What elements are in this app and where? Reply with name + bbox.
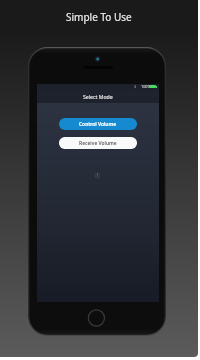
staticText: 100% — [141, 84, 151, 89]
button[interactable]: Receive Volume — [59, 137, 137, 149]
button[interactable]: Control Volume — [59, 118, 137, 130]
staticText: Simple To Use — [66, 10, 132, 24]
staticText: Receive Volume — [79, 140, 117, 147]
staticText: Select Mode — [83, 93, 113, 100]
other: Power — [93, 171, 102, 180]
staticText: Control Volume — [79, 121, 117, 128]
